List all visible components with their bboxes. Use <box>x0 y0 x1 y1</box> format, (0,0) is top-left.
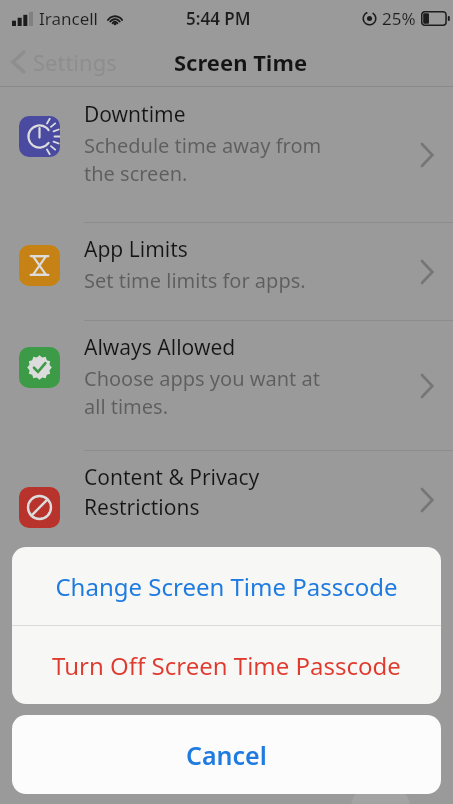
staticText: Screen Time <box>174 47 308 77</box>
button[interactable]: Content & Privacy Restrictions <box>0 451 453 548</box>
button[interactable]: Turn Off Screen Time Passcode <box>12 626 441 704</box>
button[interactable]: Cancel <box>12 715 441 794</box>
staticText: 5:44 PM <box>186 7 251 30</box>
staticText: Downtime <box>84 100 186 129</box>
staticText: 25% <box>382 7 416 30</box>
staticText: Change Screen Time Passcode <box>55 570 398 603</box>
staticText: Settings <box>33 47 117 77</box>
button[interactable]: Downtime <box>0 88 453 222</box>
button[interactable]: Settings <box>8 47 117 77</box>
staticText: Cancel <box>186 738 267 772</box>
staticText: Irancell <box>39 7 99 30</box>
staticText: Choose apps you want at all times. <box>84 365 320 420</box>
staticText: Always Allowed <box>84 333 236 362</box>
staticText: Turn Off Screen Time Passcode <box>52 649 401 682</box>
staticText: Schedule time away from the screen. <box>84 132 322 187</box>
staticText: App Limits <box>84 235 188 264</box>
staticText: Content & Privacy Restrictions <box>84 463 260 521</box>
button[interactable]: App Limits <box>0 223 453 320</box>
button[interactable]: Always Allowed <box>0 321 453 450</box>
button[interactable]: Change Screen Time Passcode <box>12 547 441 625</box>
staticText: Set time limits for apps. <box>84 267 306 294</box>
